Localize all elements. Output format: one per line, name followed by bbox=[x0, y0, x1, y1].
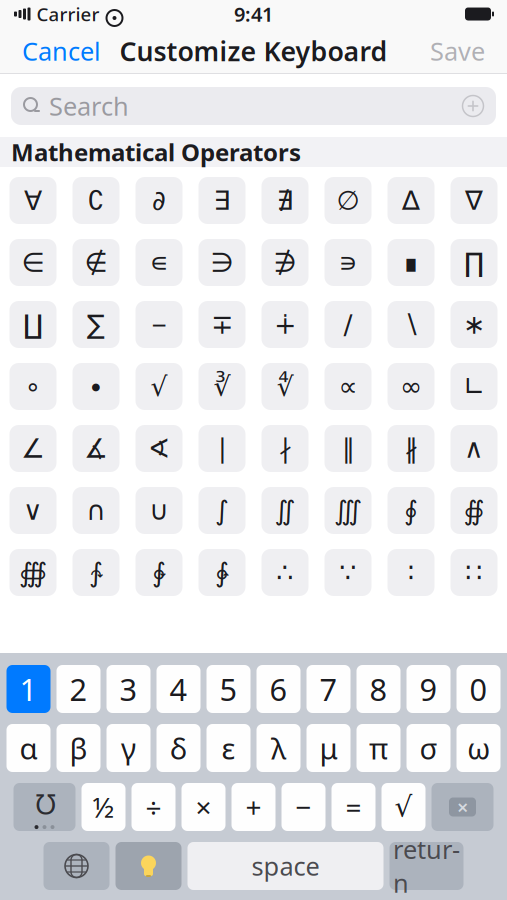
button[interactable]: = bbox=[331, 783, 375, 831]
button[interactable]: + bbox=[231, 783, 275, 831]
button[interactable]: ∶ bbox=[387, 549, 434, 596]
button[interactable]: 5 bbox=[206, 665, 250, 713]
button[interactable]: ∮ bbox=[387, 487, 434, 534]
button[interactable]: ∜ bbox=[261, 363, 308, 410]
button[interactable]: ÷ bbox=[131, 783, 175, 831]
button[interactable]: ∵ bbox=[324, 549, 371, 596]
button[interactable]: Save bbox=[422, 28, 493, 74]
button[interactable]: ∧ bbox=[450, 425, 497, 472]
button[interactable]: ∑ bbox=[72, 301, 119, 348]
button[interactable]: μ bbox=[306, 724, 350, 772]
button[interactable]: ∲ bbox=[135, 549, 182, 596]
button[interactable]: ∅ bbox=[324, 177, 371, 224]
button[interactable]: ∭ bbox=[324, 487, 371, 534]
button[interactable]: ∨ bbox=[9, 487, 56, 534]
button[interactable]: ∴ bbox=[261, 549, 308, 596]
staticText: − bbox=[151, 307, 166, 342]
button[interactable]: Delete bbox=[431, 783, 493, 831]
button[interactable]: ∈ bbox=[9, 239, 56, 286]
button[interactable]: β bbox=[56, 724, 100, 772]
button[interactable]: √ bbox=[135, 363, 182, 410]
button[interactable]: ∳ bbox=[198, 549, 245, 596]
button[interactable]: − bbox=[281, 783, 325, 831]
button[interactable]: δ bbox=[156, 724, 200, 772]
button[interactable]: ∝ bbox=[324, 363, 371, 410]
button[interactable]: ∛ bbox=[198, 363, 245, 410]
button[interactable]: 4 bbox=[156, 665, 200, 713]
button[interactable]: √ bbox=[381, 783, 425, 831]
button[interactable]: ∌ bbox=[261, 239, 308, 286]
button[interactable]: ∕ bbox=[324, 301, 371, 348]
button[interactable]: ∫ bbox=[198, 487, 245, 534]
button[interactable]: ∋ bbox=[198, 239, 245, 286]
button[interactable]: ∢ bbox=[135, 425, 182, 472]
button[interactable]: ∀ bbox=[9, 177, 56, 224]
staticText: ∏ bbox=[464, 247, 484, 278]
button[interactable]: ∏ bbox=[450, 239, 497, 286]
button[interactable]: return bbox=[389, 842, 463, 890]
button[interactable]: space bbox=[187, 842, 383, 890]
button[interactable]: − bbox=[135, 301, 182, 348]
button[interactable]: λ bbox=[256, 724, 300, 772]
staticText: Mathematical Operators bbox=[11, 136, 301, 168]
button[interactable]: ∞ bbox=[387, 363, 434, 410]
button[interactable]: σ bbox=[406, 724, 450, 772]
button[interactable]: π bbox=[356, 724, 400, 772]
button[interactable]: ∱ bbox=[72, 549, 119, 596]
button[interactable]: ω bbox=[456, 724, 500, 772]
button[interactable]: 9 bbox=[406, 665, 450, 713]
button[interactable]: 0 bbox=[456, 665, 500, 713]
button[interactable]: ∥ bbox=[324, 425, 371, 472]
button[interactable]: ∤ bbox=[261, 425, 308, 472]
button[interactable]: ∡ bbox=[72, 425, 119, 472]
button[interactable]: ∖ bbox=[387, 301, 434, 348]
button[interactable]: ∬ bbox=[261, 487, 308, 534]
button[interactable]: ε bbox=[206, 724, 250, 772]
button[interactable]: ∘ bbox=[9, 363, 56, 410]
button[interactable]: ∗ bbox=[450, 301, 497, 348]
button[interactable]: Next keyboard bbox=[43, 842, 109, 890]
button[interactable]: 1 bbox=[6, 665, 50, 713]
button[interactable]: 2 bbox=[56, 665, 100, 713]
button[interactable]: ∐ bbox=[9, 301, 56, 348]
button[interactable]: Search bbox=[11, 87, 496, 125]
button[interactable]: ∂ bbox=[135, 177, 182, 224]
staticText: ∥ bbox=[341, 433, 354, 464]
button[interactable]: ½ bbox=[81, 783, 125, 831]
button[interactable]: ∔ bbox=[261, 301, 308, 348]
button[interactable]: ∠ bbox=[9, 425, 56, 472]
button[interactable]: 3 bbox=[106, 665, 150, 713]
button[interactable]: ∎ bbox=[387, 239, 434, 286]
button[interactable]: ∩ bbox=[72, 487, 119, 534]
staticText: ÷ bbox=[145, 788, 161, 826]
button[interactable]: ∄ bbox=[261, 177, 308, 224]
button[interactable]: ∊ bbox=[135, 239, 182, 286]
staticText: ∑ bbox=[87, 309, 105, 340]
button[interactable]: 6 bbox=[256, 665, 300, 713]
button[interactable]: γ bbox=[106, 724, 150, 772]
button[interactable]: 8 bbox=[356, 665, 400, 713]
button[interactable]: ∰ bbox=[9, 549, 56, 596]
button[interactable]: ∟ bbox=[450, 363, 497, 410]
button[interactable]: ∆ bbox=[387, 177, 434, 224]
button[interactable]: ∃ bbox=[198, 177, 245, 224]
staticText: ∷ bbox=[465, 557, 482, 588]
button[interactable]: ∣ bbox=[198, 425, 245, 472]
button[interactable]: ∙ bbox=[72, 363, 119, 410]
button[interactable]: More symbols bbox=[13, 783, 75, 831]
button[interactable]: ∍ bbox=[324, 239, 371, 286]
button[interactable]: ∇ bbox=[450, 177, 497, 224]
button[interactable]: ∷ bbox=[450, 549, 497, 596]
staticText: ∶ bbox=[407, 557, 414, 588]
button[interactable]: ∁ bbox=[72, 177, 119, 224]
button[interactable]: ∉ bbox=[72, 239, 119, 286]
button[interactable]: ∯ bbox=[450, 487, 497, 534]
button[interactable]: ∪ bbox=[135, 487, 182, 534]
button[interactable]: ∦ bbox=[387, 425, 434, 472]
button[interactable]: ∓ bbox=[198, 301, 245, 348]
button[interactable]: Suggestions bbox=[115, 842, 181, 890]
button[interactable]: Cancel bbox=[14, 28, 109, 74]
button[interactable]: × bbox=[181, 783, 225, 831]
button[interactable]: 7 bbox=[306, 665, 350, 713]
button[interactable]: α bbox=[6, 724, 50, 772]
